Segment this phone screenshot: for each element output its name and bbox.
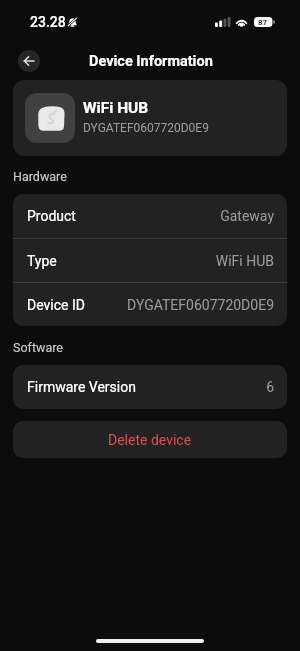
staticText: DYGATEF0607720D0E9	[83, 121, 209, 135]
staticText: Device ID	[27, 297, 85, 313]
staticText: Type	[27, 253, 57, 269]
button[interactable]: Back	[18, 50, 40, 72]
staticText: 6	[266, 379, 274, 395]
staticText: Software	[13, 340, 63, 355]
button[interactable]: WiFi HUB	[13, 80, 287, 156]
staticText: WiFi HUB	[215, 253, 274, 269]
button[interactable]: Delete device	[13, 421, 287, 458]
staticText: Device Information	[89, 53, 213, 70]
button[interactable]: Product	[13, 194, 287, 238]
staticText: Product	[27, 208, 76, 224]
staticText: 87	[258, 18, 268, 27]
staticText: DYGATEF0607720D0E9	[127, 297, 274, 313]
button[interactable]: Device ID	[13, 283, 287, 326]
staticText: WiFi HUB	[83, 99, 149, 117]
staticText: Hardware	[13, 169, 67, 184]
staticText: 23.28	[30, 14, 66, 30]
staticText: Firmware Version	[27, 379, 136, 395]
button[interactable]: Firmware Version	[13, 365, 287, 409]
staticText: Gateway	[220, 208, 274, 224]
button[interactable]: Type	[13, 239, 287, 282]
staticText: Delete device	[108, 432, 192, 448]
